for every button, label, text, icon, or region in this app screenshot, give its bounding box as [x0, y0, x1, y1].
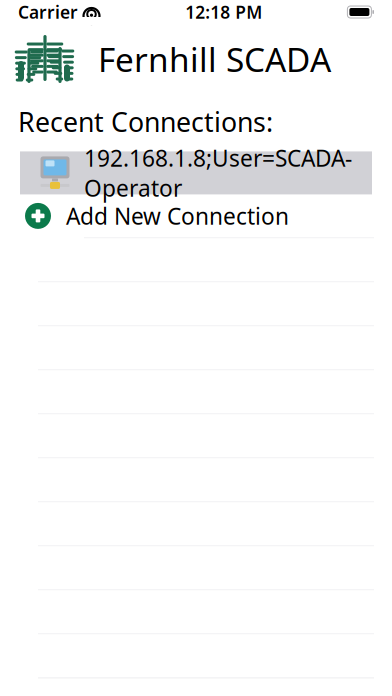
staticText: Fernhill SCADA [98, 37, 331, 81]
staticText: Add New Connection [66, 201, 289, 231]
staticText: Carrier [18, 0, 78, 23]
staticText: Recent Connections: [18, 104, 273, 139]
button[interactable]: Add New Connection [0, 194, 392, 238]
staticText: 192.168.1.8;User=SCADAOperator [84, 143, 352, 203]
staticText: 12:18 PM [185, 0, 262, 23]
button[interactable]: 192.168.1.8;User=SCADAOperator [0, 151, 392, 194]
